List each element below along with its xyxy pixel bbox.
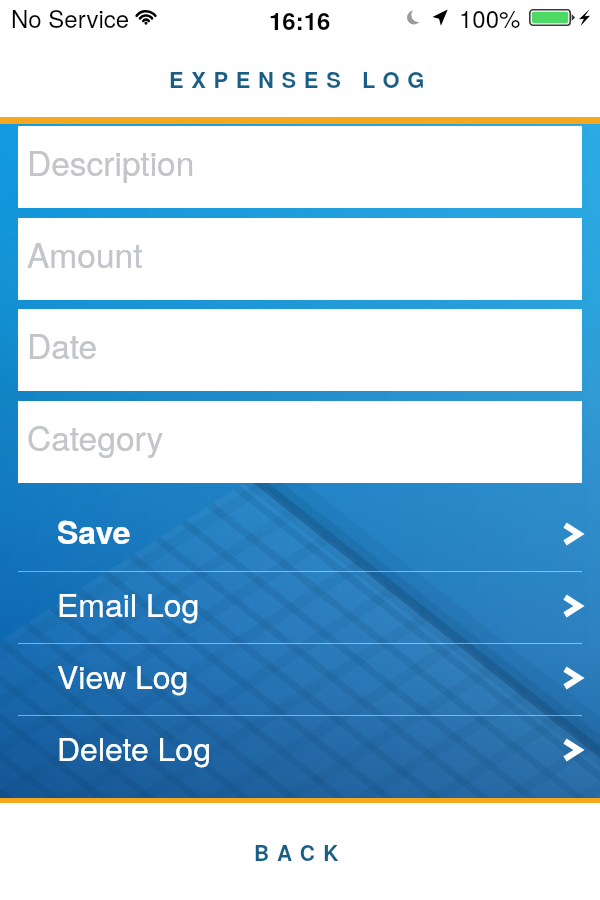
staticText: View Log (57, 652, 189, 698)
staticText: Delete Log (57, 724, 211, 770)
staticText: Date (27, 321, 98, 369)
staticText: 100% (459, 0, 521, 34)
staticText: Amount (27, 230, 143, 278)
staticText: 16:16 (269, 3, 331, 37)
button[interactable]: Save (0, 500, 600, 572)
staticText: BACK (254, 837, 347, 867)
button[interactable]: Date (18, 309, 582, 391)
staticText: Description (27, 138, 195, 186)
button[interactable]: Category (18, 401, 582, 483)
button[interactable]: Description (18, 126, 582, 208)
staticText: No Service (11, 0, 130, 34)
staticText: Save (57, 508, 131, 554)
other: Open (562, 666, 582, 690)
button[interactable]: Delete Log (0, 716, 600, 787)
staticText: Category (27, 413, 164, 461)
button[interactable]: Email Log (0, 572, 600, 644)
button[interactable]: BACK (224, 823, 377, 881)
button[interactable]: View Log (0, 644, 600, 716)
button[interactable]: Amount (18, 218, 582, 300)
staticText: Email Log (57, 580, 200, 626)
other: Open (562, 594, 582, 618)
other: Open (562, 522, 582, 546)
staticText: EXPENSES LOG (169, 63, 432, 95)
other: Open (562, 738, 582, 762)
